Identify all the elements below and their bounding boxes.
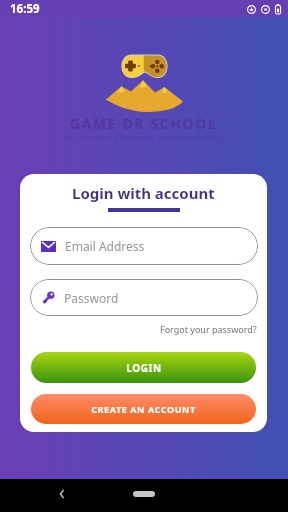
button[interactable]: Forgot your password? bbox=[160, 323, 257, 335]
button[interactable]: CREATE AN ACCOUNT bbox=[31, 394, 256, 424]
staticText: LOGIN bbox=[126, 361, 162, 375]
staticText: DE L'OVENSILE GENIE DE L'INFORMATIQUE) bbox=[64, 134, 224, 144]
staticText: Login with account bbox=[72, 183, 215, 203]
staticText: Forgot your password? bbox=[160, 323, 257, 335]
staticText: GAME DR SCHOOL bbox=[70, 114, 218, 133]
staticText: Password bbox=[64, 290, 119, 306]
button[interactable]: LOGIN bbox=[31, 352, 256, 383]
staticText: 16:59 bbox=[10, 1, 40, 17]
staticText: Email Address bbox=[65, 238, 145, 254]
button[interactable]: Email Address bbox=[30, 227, 258, 265]
button[interactable]: Password bbox=[30, 279, 258, 316]
button[interactable]: Back bbox=[52, 484, 72, 504]
staticText: CREATE AN ACCOUNT bbox=[91, 403, 196, 415]
button[interactable]: Home bbox=[133, 491, 155, 497]
